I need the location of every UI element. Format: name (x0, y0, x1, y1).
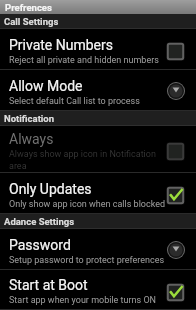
other: Private Numbers checkbox (166, 38, 185, 61)
button[interactable]: Private Numbers (0, 29, 196, 70)
other: Start at Boot checkbox (166, 279, 185, 302)
staticText: Notification (4, 113, 55, 124)
staticText: Private Numbers (9, 37, 113, 53)
button[interactable]: Always (0, 126, 196, 173)
staticText: Select default Call list to process (9, 96, 140, 107)
other: Only Updates checkbox (166, 182, 185, 205)
button[interactable]: Start at Boot (0, 270, 196, 310)
staticText: Only Updates (9, 181, 92, 197)
staticText: Start at Boot (9, 277, 88, 293)
button[interactable]: Allow Mode (0, 70, 196, 111)
staticText: Reject all private and hidden numbers (9, 55, 159, 66)
staticText: Only show app icon when calls blocked (9, 199, 165, 210)
staticText: Adance Settings (4, 216, 75, 227)
other: Always checkbox (166, 138, 185, 161)
staticText: Prefrences (5, 2, 52, 13)
staticText: Always show app icon in Notification are… (9, 149, 165, 171)
staticText: Start app when your mobile turns ON (9, 295, 157, 306)
staticText: Setup password to protect preferences (9, 255, 165, 266)
button[interactable]: Password (0, 229, 196, 270)
staticText: Allow Mode (9, 78, 83, 94)
staticText: Always (9, 131, 54, 147)
other: Password options (167, 241, 185, 259)
button[interactable]: Only Updates (0, 173, 196, 214)
staticText: Call Settings (4, 16, 59, 27)
other: Allow Mode options (167, 82, 185, 100)
staticText: Password (9, 237, 71, 253)
